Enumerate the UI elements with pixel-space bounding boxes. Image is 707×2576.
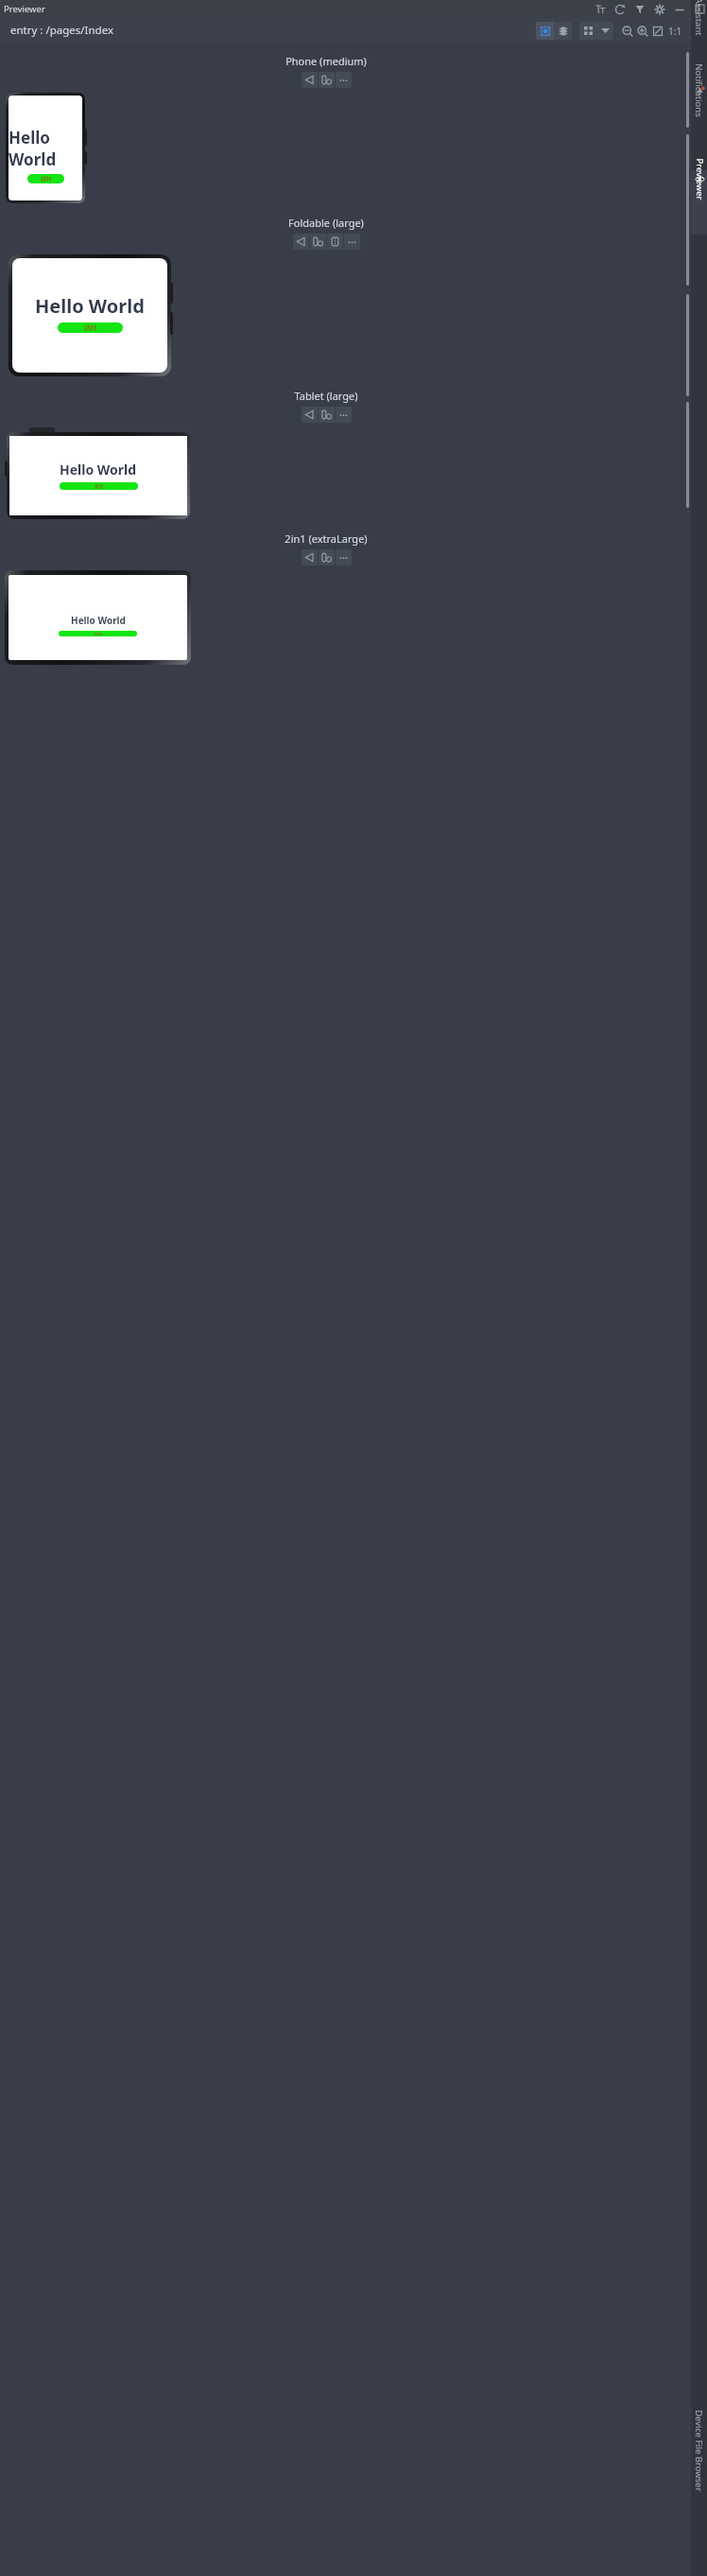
staticText: 跳转	[95, 632, 102, 636]
button[interactable]: More	[344, 234, 360, 250]
button[interactable]: Previewer	[691, 184, 707, 232]
button[interactable]: Text size	[594, 3, 607, 16]
button[interactable]: Back	[302, 407, 318, 423]
staticText: 1:1	[668, 25, 682, 38]
button[interactable]: Rotate	[319, 72, 335, 88]
button[interactable]: Layers	[554, 22, 572, 40]
button[interactable]: More	[336, 72, 352, 88]
staticText: Hello World	[71, 614, 126, 627]
button[interactable]: Device File Browser	[691, 2470, 707, 2570]
staticText: Notifications	[693, 105, 705, 159]
button[interactable]: Minimize	[673, 3, 686, 16]
button[interactable]: 跳转	[27, 174, 64, 183]
staticText: Tablet (large)	[294, 389, 358, 403]
staticText: Hello World	[60, 461, 137, 479]
staticText: entry : /pages/Index	[10, 23, 113, 38]
button[interactable]: Notifications	[691, 97, 707, 166]
staticText: Kit Assistant	[693, 24, 705, 76]
staticText: Phone (medium)	[285, 54, 367, 68]
button[interactable]: Layout mode	[579, 22, 613, 40]
button[interactable]: 跳转	[59, 631, 137, 636]
staticText: Hello World	[9, 127, 82, 170]
button[interactable]: Fold	[327, 234, 343, 250]
button[interactable]: Rotate	[310, 234, 326, 250]
staticText: 2in1 (extraLarge)	[285, 531, 368, 546]
button[interactable]: Rotate	[319, 407, 335, 423]
button[interactable]: More	[336, 407, 352, 423]
button[interactable]: 跳转	[58, 322, 123, 333]
staticText: 跳转	[95, 483, 104, 489]
staticText: Foldable (large)	[288, 216, 364, 230]
button[interactable]: Refresh	[613, 3, 627, 16]
staticText: Previewer	[693, 187, 706, 228]
button[interactable]: 1:1	[667, 25, 683, 38]
button[interactable]: Filter	[633, 3, 647, 16]
staticText: Device File Browser	[693, 2480, 705, 2562]
staticText: 跳转	[41, 175, 52, 183]
button[interactable]: Rotate	[319, 549, 335, 566]
button[interactable]: Back	[302, 72, 318, 88]
button[interactable]: Inspector	[536, 22, 554, 40]
button[interactable]: Settings	[653, 3, 666, 16]
button[interactable]: Fit to window	[651, 25, 664, 38]
staticText: 跳转	[84, 323, 97, 332]
button[interactable]: 跳转	[60, 482, 138, 490]
button[interactable]: More	[336, 549, 352, 566]
staticText: Hello World	[35, 293, 145, 319]
button[interactable]: Zoom in	[636, 25, 649, 38]
staticText: Previewer	[4, 3, 45, 15]
button[interactable]: Zoom out	[621, 25, 634, 38]
button[interactable]: Kit Assistant	[691, 15, 707, 84]
button[interactable]: Hide tool window	[693, 2, 706, 15]
button[interactable]: Back	[302, 549, 318, 566]
button[interactable]: Back	[293, 234, 309, 250]
